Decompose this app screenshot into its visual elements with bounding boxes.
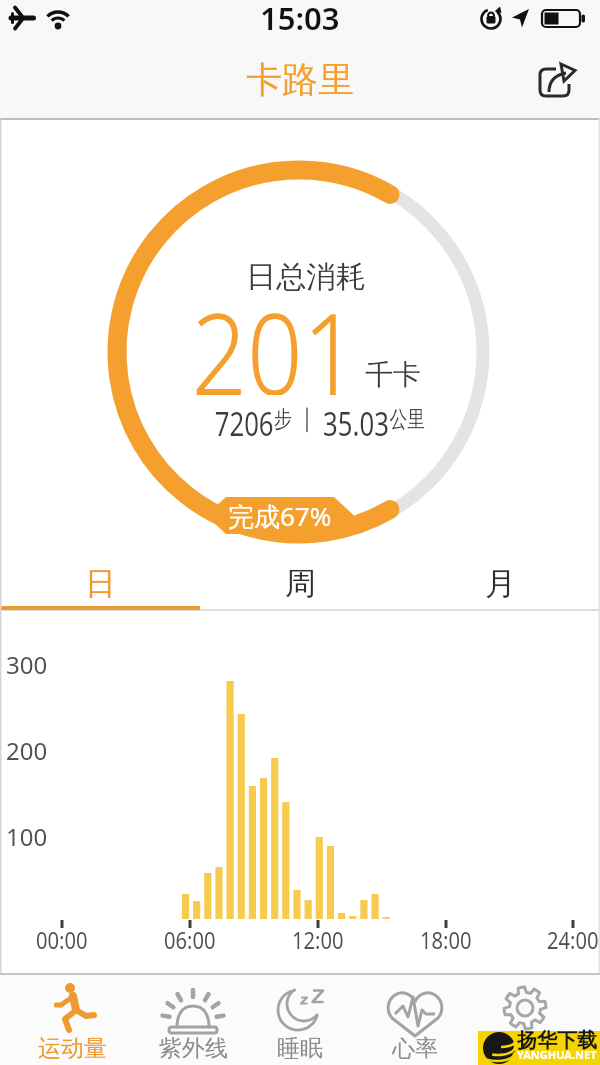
staticText: 丨 [292,401,323,437]
staticText: 7206 [215,401,274,437]
button[interactable]: 心率 [359,975,471,1065]
staticText: 15:03 [260,0,340,39]
staticText: 00:00 [36,923,88,956]
staticText: YANGHUA.NET [517,1047,597,1062]
button[interactable]: 周 [200,557,400,609]
staticText: 睡眠 [277,1034,323,1063]
staticText: 月 [485,564,516,603]
button[interactable] [471,975,583,1065]
staticText: 12:00 [292,923,344,956]
staticText: 完成67% [228,498,332,534]
button[interactable] [530,52,586,108]
staticText: 卡路里 [246,57,354,102]
staticText: 日总消耗 [246,258,366,296]
staticText: 18:00 [420,923,472,956]
staticText: 心率 [392,1034,438,1063]
staticText: 300 [6,648,48,681]
button[interactable]: 运动量 [16,975,128,1065]
staticText: 200 [6,734,48,767]
staticText: 紫外线 [159,1034,228,1063]
staticText: 千卡 [365,357,421,392]
staticText: 100 [6,820,48,853]
button[interactable]: 日 [0,557,200,609]
staticText: 日 [85,564,116,603]
staticText: 步 [274,405,292,434]
button[interactable]: 睡眠 [244,975,356,1065]
staticText: 公里 [389,405,425,434]
button[interactable]: 月 [400,557,600,609]
button[interactable]: 完成67% [206,497,354,534]
staticText: 运动量 [38,1034,107,1063]
button[interactable]: 紫外线 [137,975,249,1065]
staticText: 周 [285,564,316,603]
staticText: 24:00 [547,923,599,956]
staticText: 06:00 [164,923,216,956]
staticText: 35.03 [323,401,389,437]
staticText: 扬华下载 [517,1028,597,1053]
staticText: 201 [191,275,358,395]
